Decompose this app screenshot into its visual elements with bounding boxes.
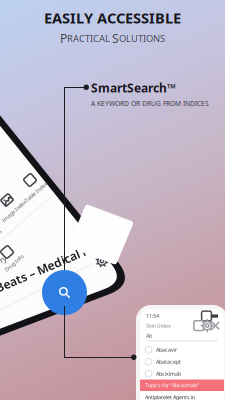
staticText: Abciximab <box>156 370 181 377</box>
staticText: Drug Info <box>2 259 25 267</box>
staticText: S <box>112 30 119 46</box>
staticText: Antiplatelet Agents in UA/NSTEMI <box>145 394 195 400</box>
staticText: Abatacept <box>156 358 181 365</box>
staticText: Ab <box>146 332 152 339</box>
staticText: RACTICAL <box>67 32 112 45</box>
staticText: Abacavir <box>156 346 177 353</box>
staticText: Table Index <box>22 188 50 196</box>
staticText: SmartSearch™ <box>91 80 176 96</box>
staticText: Topics for “Abciximab” <box>145 382 199 389</box>
staticText: EASILY ACCESSIBLE <box>44 8 181 27</box>
staticText: ry <box>0 254 6 264</box>
staticText: 11:54 <box>146 312 159 320</box>
staticText: Image Index <box>0 207 29 215</box>
staticText: A KEYWORD OR DRUG FROM INDICES <box>91 99 209 108</box>
staticText: OLUTIONS <box>119 32 165 45</box>
button[interactable]: SmartSearch <box>42 270 87 315</box>
staticText: Skin Index <box>146 322 171 329</box>
staticText: Calculators <box>0 235 4 243</box>
staticText: MedBeats – Medical News <box>0 261 118 277</box>
staticText: P <box>60 30 67 46</box>
